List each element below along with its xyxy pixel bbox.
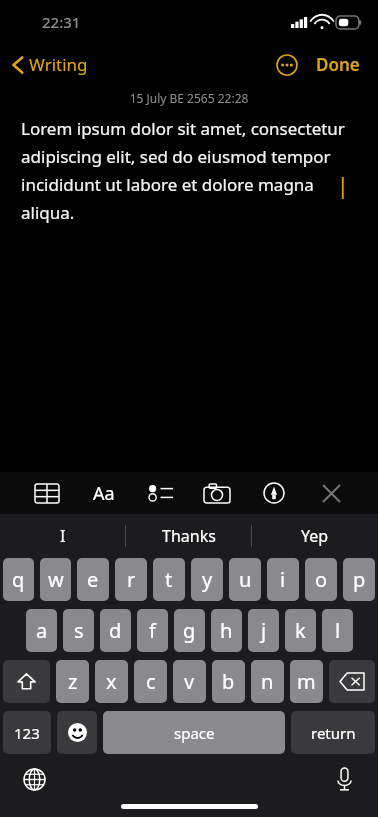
button[interactable]: Writing <box>8 49 92 80</box>
button[interactable]: return <box>291 711 375 754</box>
staticText: o <box>315 566 328 593</box>
button[interactable]: b <box>212 660 245 703</box>
button[interactable]: Markup <box>254 473 294 513</box>
staticText: b <box>222 668 235 695</box>
staticText: Writing <box>29 53 88 76</box>
button[interactable]: c <box>134 660 167 703</box>
button[interactable]: w <box>40 558 71 601</box>
button[interactable]: More options <box>272 50 302 80</box>
button[interactable]: g <box>174 609 205 652</box>
staticText: m <box>297 668 316 695</box>
staticText: Yep <box>301 525 329 547</box>
button[interactable]: n <box>251 660 284 703</box>
button[interactable]: Yep <box>252 514 378 558</box>
button[interactable]: k <box>285 609 316 652</box>
button[interactable]: l <box>322 609 353 652</box>
staticText: d <box>109 617 122 644</box>
staticText: s <box>74 617 84 644</box>
staticText: 15 July BE 2565 22:28 <box>0 90 378 106</box>
staticText: Lorem ipsum dolor sit amet, consectetur … <box>21 117 357 224</box>
button[interactable]: Change keyboard <box>14 759 54 799</box>
button[interactable]: t <box>153 558 185 601</box>
button[interactable]: Done <box>312 49 364 80</box>
staticText: z <box>68 668 78 695</box>
staticText: j <box>261 617 267 644</box>
button[interactable]: Emoji <box>57 711 97 754</box>
button[interactable]: v <box>173 660 206 703</box>
button[interactable]: j <box>248 609 279 652</box>
staticText: t <box>165 566 173 593</box>
button[interactable]: Thanks <box>126 514 252 558</box>
staticText: p <box>353 566 366 593</box>
button[interactable]: e <box>77 558 109 601</box>
staticText: 123 <box>14 723 40 743</box>
button[interactable]: 123 <box>3 711 51 754</box>
staticText: h <box>220 617 233 644</box>
staticText: 22:31 <box>42 12 81 32</box>
staticText: I <box>60 525 66 547</box>
button[interactable]: Shift <box>3 660 50 703</box>
staticText: i <box>280 566 286 593</box>
staticText: a <box>36 617 48 644</box>
button[interactable]: Backspace <box>329 660 375 703</box>
staticText: w <box>48 566 64 593</box>
button[interactable]: d <box>100 609 131 652</box>
staticText: f <box>149 617 156 644</box>
button[interactable]: r <box>115 558 147 601</box>
button[interactable]: q <box>3 558 34 601</box>
staticText: r <box>127 566 136 593</box>
button[interactable]: i <box>267 558 299 601</box>
button[interactable]: a <box>26 609 57 652</box>
button[interactable]: u <box>229 558 261 601</box>
button[interactable]: space <box>103 711 285 754</box>
staticText: c <box>146 668 156 695</box>
button[interactable]: x <box>95 660 128 703</box>
button[interactable]: h <box>211 609 242 652</box>
button[interactable]: y <box>191 558 223 601</box>
staticText: v <box>184 668 195 695</box>
staticText: l <box>335 617 341 644</box>
button[interactable]: Dictation <box>324 759 364 799</box>
staticText: e <box>87 566 99 593</box>
button[interactable]: f <box>137 609 168 652</box>
button[interactable]: Camera <box>197 473 237 513</box>
button[interactable]: Checklist <box>141 473 181 513</box>
staticText: Thanks <box>162 525 216 547</box>
staticText: q <box>12 566 25 593</box>
staticText: return <box>311 723 356 743</box>
staticText: k <box>295 617 306 644</box>
staticText: g <box>183 617 196 644</box>
button[interactable]: Text format <box>84 473 124 513</box>
button[interactable]: p <box>343 558 375 601</box>
staticText: Done <box>316 53 360 76</box>
button[interactable]: Table <box>27 473 67 513</box>
button[interactable]: Close toolbar <box>311 473 351 513</box>
staticText: y <box>202 566 213 593</box>
staticText: x <box>106 668 117 695</box>
staticText: Aa <box>93 481 115 506</box>
button[interactable]: s <box>63 609 94 652</box>
staticText: space <box>174 723 215 743</box>
button[interactable]: I <box>0 514 126 558</box>
staticText: n <box>261 668 274 695</box>
button[interactable]: z <box>56 660 89 703</box>
button[interactable]: o <box>305 558 337 601</box>
button[interactable]: m <box>290 660 323 703</box>
staticText: u <box>239 566 252 593</box>
